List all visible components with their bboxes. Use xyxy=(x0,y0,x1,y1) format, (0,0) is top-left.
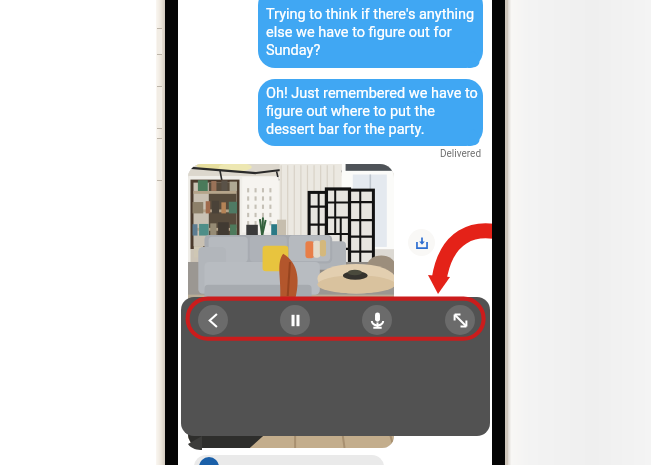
button[interactable]: Microphone xyxy=(362,305,392,335)
staticText: Trying to think if there's anything else… xyxy=(266,6,475,58)
button[interactable]: Back xyxy=(198,305,228,335)
staticText: Oh! Just remembered we have to figure ou… xyxy=(266,85,478,137)
button[interactable]: Pause xyxy=(280,305,310,335)
button[interactable]: Expand xyxy=(445,305,475,335)
staticText: Delivered xyxy=(440,148,482,160)
button[interactable]: Oh! Just remembered we have to figure ou… xyxy=(258,79,483,146)
button[interactable]: Trying to think if there's anything else… xyxy=(258,0,483,68)
button[interactable]: Photo xyxy=(188,164,394,448)
button[interactable] xyxy=(194,455,384,465)
button[interactable]: Save xyxy=(408,229,435,256)
